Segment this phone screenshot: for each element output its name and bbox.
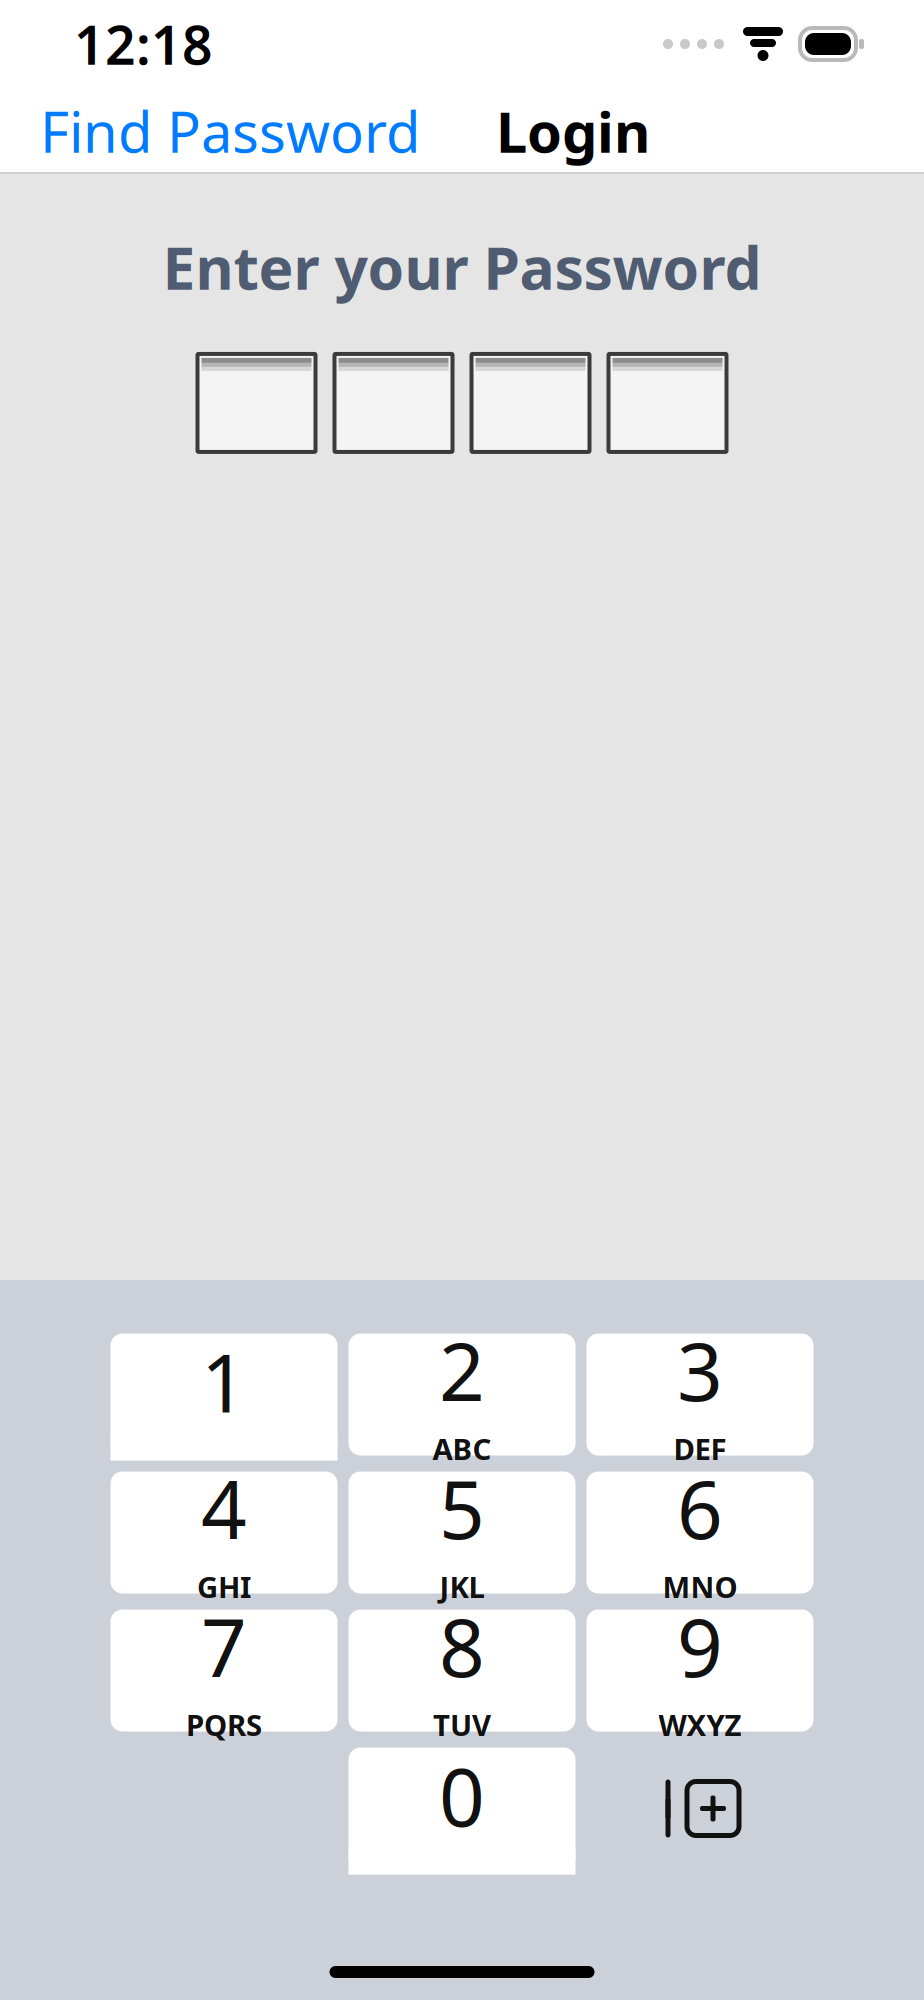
staticText: 6 — [677, 1455, 723, 1561]
button[interactable]: 6 — [586, 1471, 813, 1593]
button[interactable]: 3 — [586, 1333, 813, 1455]
button[interactable]: 8 — [348, 1609, 575, 1731]
button[interactable]: 9 — [586, 1609, 813, 1731]
staticText: ABC — [432, 1429, 491, 1468]
staticText: 9 — [677, 1593, 723, 1699]
button[interactable]: Delete — [586, 1747, 813, 1869]
button[interactable]: 1 — [110, 1333, 337, 1455]
staticText: JKL — [439, 1567, 484, 1606]
staticText: 3 — [677, 1317, 723, 1423]
staticText: GHI — [197, 1567, 251, 1606]
staticText: 2 — [439, 1317, 485, 1423]
staticText: 4 — [201, 1455, 247, 1561]
staticText: TUV — [433, 1705, 491, 1744]
staticText: 1 — [201, 1328, 247, 1435]
staticText: 5 — [439, 1455, 485, 1561]
staticText: DEF — [673, 1429, 726, 1468]
button[interactable]: 7 — [110, 1609, 337, 1731]
staticText: Enter your Password — [162, 228, 761, 306]
staticText: WXYZ — [658, 1705, 741, 1744]
button[interactable]: 5 — [348, 1471, 575, 1593]
staticText: 8 — [439, 1593, 485, 1699]
staticText: 12:18 — [74, 9, 213, 79]
button[interactable]: 2 — [348, 1333, 575, 1455]
staticText: 7 — [201, 1593, 247, 1699]
staticText: PQRS — [186, 1705, 262, 1744]
staticText: MNO — [662, 1567, 737, 1606]
staticText: 0 — [439, 1742, 485, 1849]
button[interactable]: 4 — [110, 1471, 337, 1593]
staticText: Find Password — [40, 94, 420, 168]
button[interactable]: 0 — [348, 1747, 575, 1869]
staticText: Login — [496, 94, 650, 168]
button[interactable]: Find Password — [30, 80, 430, 182]
